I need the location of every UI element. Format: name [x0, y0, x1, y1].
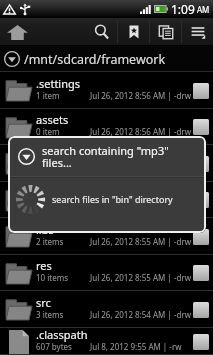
button[interactable]: Copy	[150, 18, 181, 46]
staticText: libs	[36, 222, 54, 237]
staticText: 3 items	[36, 163, 64, 174]
staticText: .classpath	[36, 327, 88, 342]
staticText: search containing "mp3" files...	[42, 143, 169, 170]
button[interactable]: Select src	[193, 302, 209, 318]
staticText: bin	[36, 149, 53, 164]
button[interactable]: assets	[0, 109, 213, 145]
button[interactable]: Select assets	[193, 119, 209, 135]
staticText: Jul 26, 2012 8:56 AM | -drw	[90, 126, 189, 137]
staticText: 2 items	[36, 236, 64, 247]
button[interactable]: Select res	[193, 265, 209, 281]
staticText: Jul 26, 2012 8:56 AM | -drw	[90, 90, 189, 101]
button[interactable]: .settings	[0, 72, 213, 109]
staticText: 607 bytes	[36, 341, 72, 352]
staticText: Jul 8, 2012 9:55 AM | -rw	[90, 341, 182, 352]
button[interactable]: search files in "bin" directory	[8, 178, 206, 220]
button[interactable]: /mnt/sdcard/framework	[0, 46, 213, 72]
staticText: search files in "bin" directory	[52, 193, 173, 205]
button[interactable]: Select libs	[193, 229, 209, 245]
staticText: Jul 26, 2012 8:55 AM | -drw	[90, 236, 189, 247]
button[interactable]: libs	[0, 218, 213, 255]
staticText: src	[36, 295, 51, 310]
button[interactable]: search containing "mp3" files...	[8, 136, 206, 176]
staticText: 1:09	[171, 1, 195, 17]
staticText: 10 items	[36, 272, 69, 283]
staticText: Jul 26, 2012 8:54 AM | -drw	[90, 309, 189, 320]
button[interactable]: Select bin	[193, 156, 209, 172]
staticText: AM	[197, 4, 210, 15]
button[interactable]: Home	[0, 18, 35, 46]
button[interactable]: Select .classpath	[193, 334, 209, 350]
button[interactable]: src	[0, 291, 213, 328]
staticText: assets	[36, 112, 69, 127]
staticText: 1 item	[36, 90, 60, 101]
button[interactable]: res	[0, 255, 213, 291]
staticText: Jul 26, 2012 8:55 AM | -drw	[90, 199, 189, 210]
staticText: 0 item	[36, 126, 60, 137]
staticText: 1 item	[36, 199, 60, 210]
staticText: 3 items	[36, 309, 64, 320]
staticText: /mnt/sdcard/framework	[24, 51, 166, 68]
button[interactable]: .classpath	[0, 328, 213, 355]
button[interactable]: Bookmarks	[118, 18, 149, 46]
button[interactable]: gen	[0, 182, 213, 218]
button[interactable]: Select gen	[193, 192, 209, 208]
staticText: res	[36, 258, 52, 273]
button[interactable]: Search	[86, 18, 117, 46]
button[interactable]: More options	[182, 18, 213, 46]
staticText: Jul 26, 2012 8:55 AM | -drw	[90, 272, 189, 283]
button[interactable]: bin	[0, 145, 213, 182]
staticText: gen	[36, 185, 56, 200]
staticText: .settings	[36, 76, 81, 91]
button[interactable]: Select .settings	[193, 83, 209, 99]
